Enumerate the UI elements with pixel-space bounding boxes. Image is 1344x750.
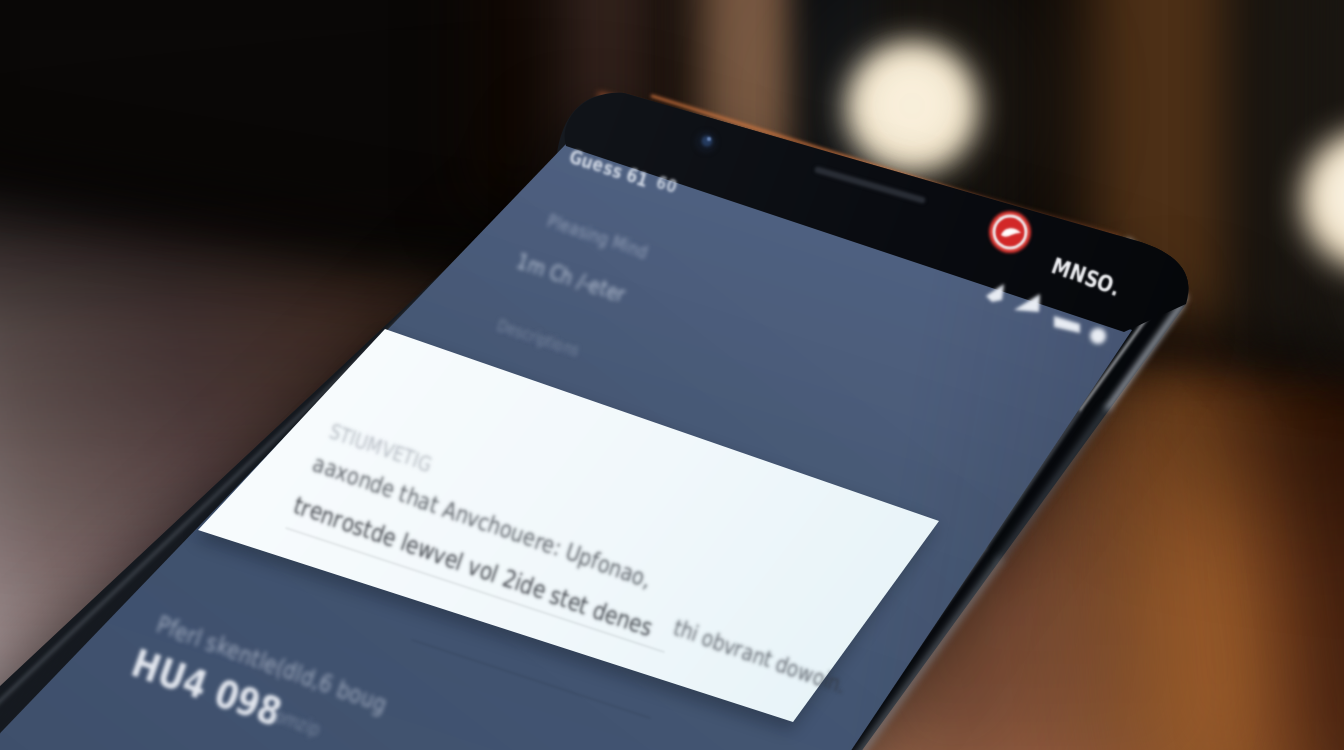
button[interactable]: Phone on a table showing an app screen bbox=[0, 0, 1344, 750]
